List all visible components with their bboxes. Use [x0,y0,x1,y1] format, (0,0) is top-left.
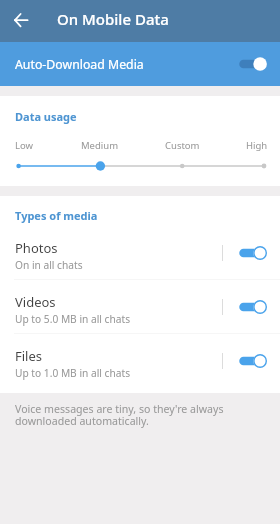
staticText: On in all chats [15,258,83,272]
staticText: Files [15,347,43,365]
button[interactable] [0,154,280,178]
button[interactable]: Files [0,334,280,388]
staticText: Auto-Download Media [15,56,144,73]
staticText: Custom [165,139,200,152]
staticText: On Mobile Data [57,9,169,29]
staticText: Voice messages are tiny, so they're alwa… [15,402,224,428]
button[interactable]: Photos [0,226,280,280]
staticText: Up to 1.0 MB in all chats [15,366,131,380]
staticText: Up to 5.0 MB in all chats [15,312,131,326]
staticText: Types of media [15,208,98,223]
staticText: Medium [81,139,119,152]
button[interactable]: Auto-Download Media [0,42,280,86]
staticText: Low [15,139,34,152]
staticText: Videos [15,293,56,311]
button[interactable]: Videos [0,280,280,334]
button[interactable]: Back [9,8,35,34]
staticText: Photos [15,239,58,257]
staticText: Data usage [15,109,77,124]
staticText: High [246,139,268,152]
